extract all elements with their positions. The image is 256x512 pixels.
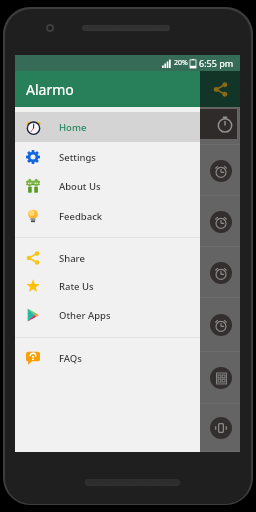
staticText: Wake up calendar xyxy=(135,319,203,331)
button[interactable]: Bedtime xyxy=(15,298,240,352)
button[interactable]: Home xyxy=(15,112,200,142)
button[interactable]: Feedback xyxy=(15,201,200,231)
staticText: 6:55 pm xyxy=(199,57,234,69)
button[interactable]: Other Apps xyxy=(15,300,200,330)
staticText: Settings xyxy=(59,151,96,164)
button[interactable]: Settings xyxy=(15,352,240,404)
button[interactable]: Set alarm xyxy=(15,145,240,196)
button[interactable]: FAQs xyxy=(15,343,200,373)
button[interactable]: Quick alarm xyxy=(15,196,240,247)
staticText: Share xyxy=(59,252,85,265)
staticText: FAQs xyxy=(59,352,82,365)
staticText: About Us xyxy=(59,180,101,193)
staticText: Feedback xyxy=(59,210,103,223)
staticText: Home xyxy=(59,121,87,134)
button[interactable]: Vibration xyxy=(15,404,240,452)
button[interactable]: About Us xyxy=(15,171,200,201)
button[interactable]: Share xyxy=(201,71,240,107)
button[interactable]: Share xyxy=(15,243,200,273)
button[interactable]: Settings xyxy=(15,142,200,172)
staticText: every day xyxy=(135,331,176,343)
button[interactable]: Reminder xyxy=(15,247,240,298)
staticText: Rate Us xyxy=(59,280,94,293)
button[interactable]: Rate Us xyxy=(15,271,200,301)
staticText: Alarmo xyxy=(26,80,74,99)
staticText: 20% xyxy=(174,58,188,68)
staticText: Other Apps xyxy=(59,309,111,322)
